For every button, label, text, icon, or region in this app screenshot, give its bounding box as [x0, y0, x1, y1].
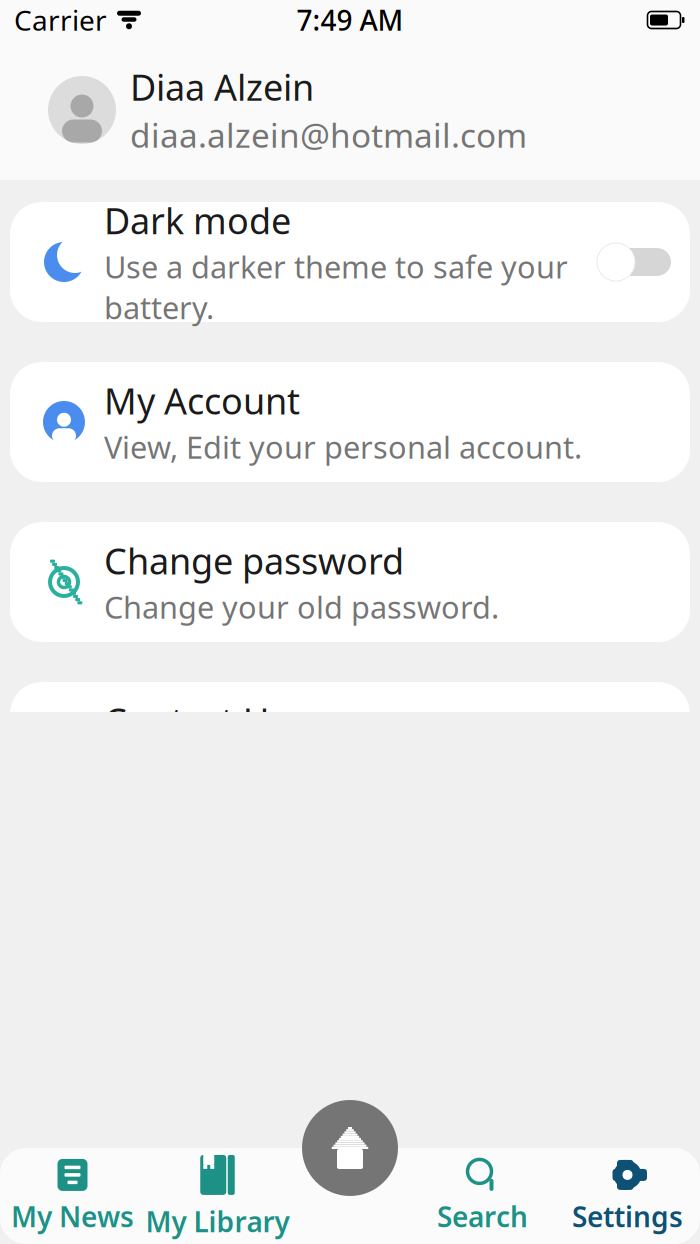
staticText: Search: [437, 1198, 528, 1235]
staticText: Read our terms and conditions.: [104, 1226, 559, 1244]
button[interactable]: Change password: [10, 522, 690, 642]
staticText: Change your old password.: [104, 586, 499, 627]
button[interactable]: Dark mode: [10, 202, 690, 322]
staticText: Contact Us: [104, 697, 286, 744]
staticText: Diaa Alzein: [130, 63, 314, 111]
staticText: Use a darker theme to safe your battery.: [104, 246, 568, 328]
staticText: Carrier: [14, 1, 107, 39]
button[interactable]: My Account: [10, 362, 690, 482]
button[interactable]: My Library: [145, 1148, 290, 1244]
button[interactable]: My News: [0, 1148, 145, 1244]
staticText: Remove or add new topics.: [104, 1066, 494, 1107]
staticText: Settings: [572, 1198, 683, 1235]
button[interactable]: Settings: [555, 1148, 700, 1244]
staticText: Terms & Conditions: [104, 1177, 432, 1224]
button[interactable]: Home: [302, 1100, 398, 1196]
staticText: My Account: [104, 377, 300, 424]
button[interactable]: Search: [410, 1148, 555, 1244]
button[interactable]: Terms & Conditions: [10, 1162, 690, 1244]
staticText: My Library: [145, 1203, 289, 1240]
staticText: Dark mode: [104, 196, 291, 244]
staticText: 7:49 AM: [296, 1, 403, 39]
staticText: diaa.alzein@hotmail.com: [130, 113, 527, 157]
button[interactable]: My Topics: [10, 1002, 690, 1122]
staticText: View, Edit your personal account.: [104, 426, 582, 467]
staticText: Change password: [104, 537, 404, 584]
button[interactable]: Diaa Alzein: [0, 40, 700, 180]
button[interactable]: Contact Us: [10, 682, 690, 802]
staticText: My News: [11, 1198, 134, 1235]
